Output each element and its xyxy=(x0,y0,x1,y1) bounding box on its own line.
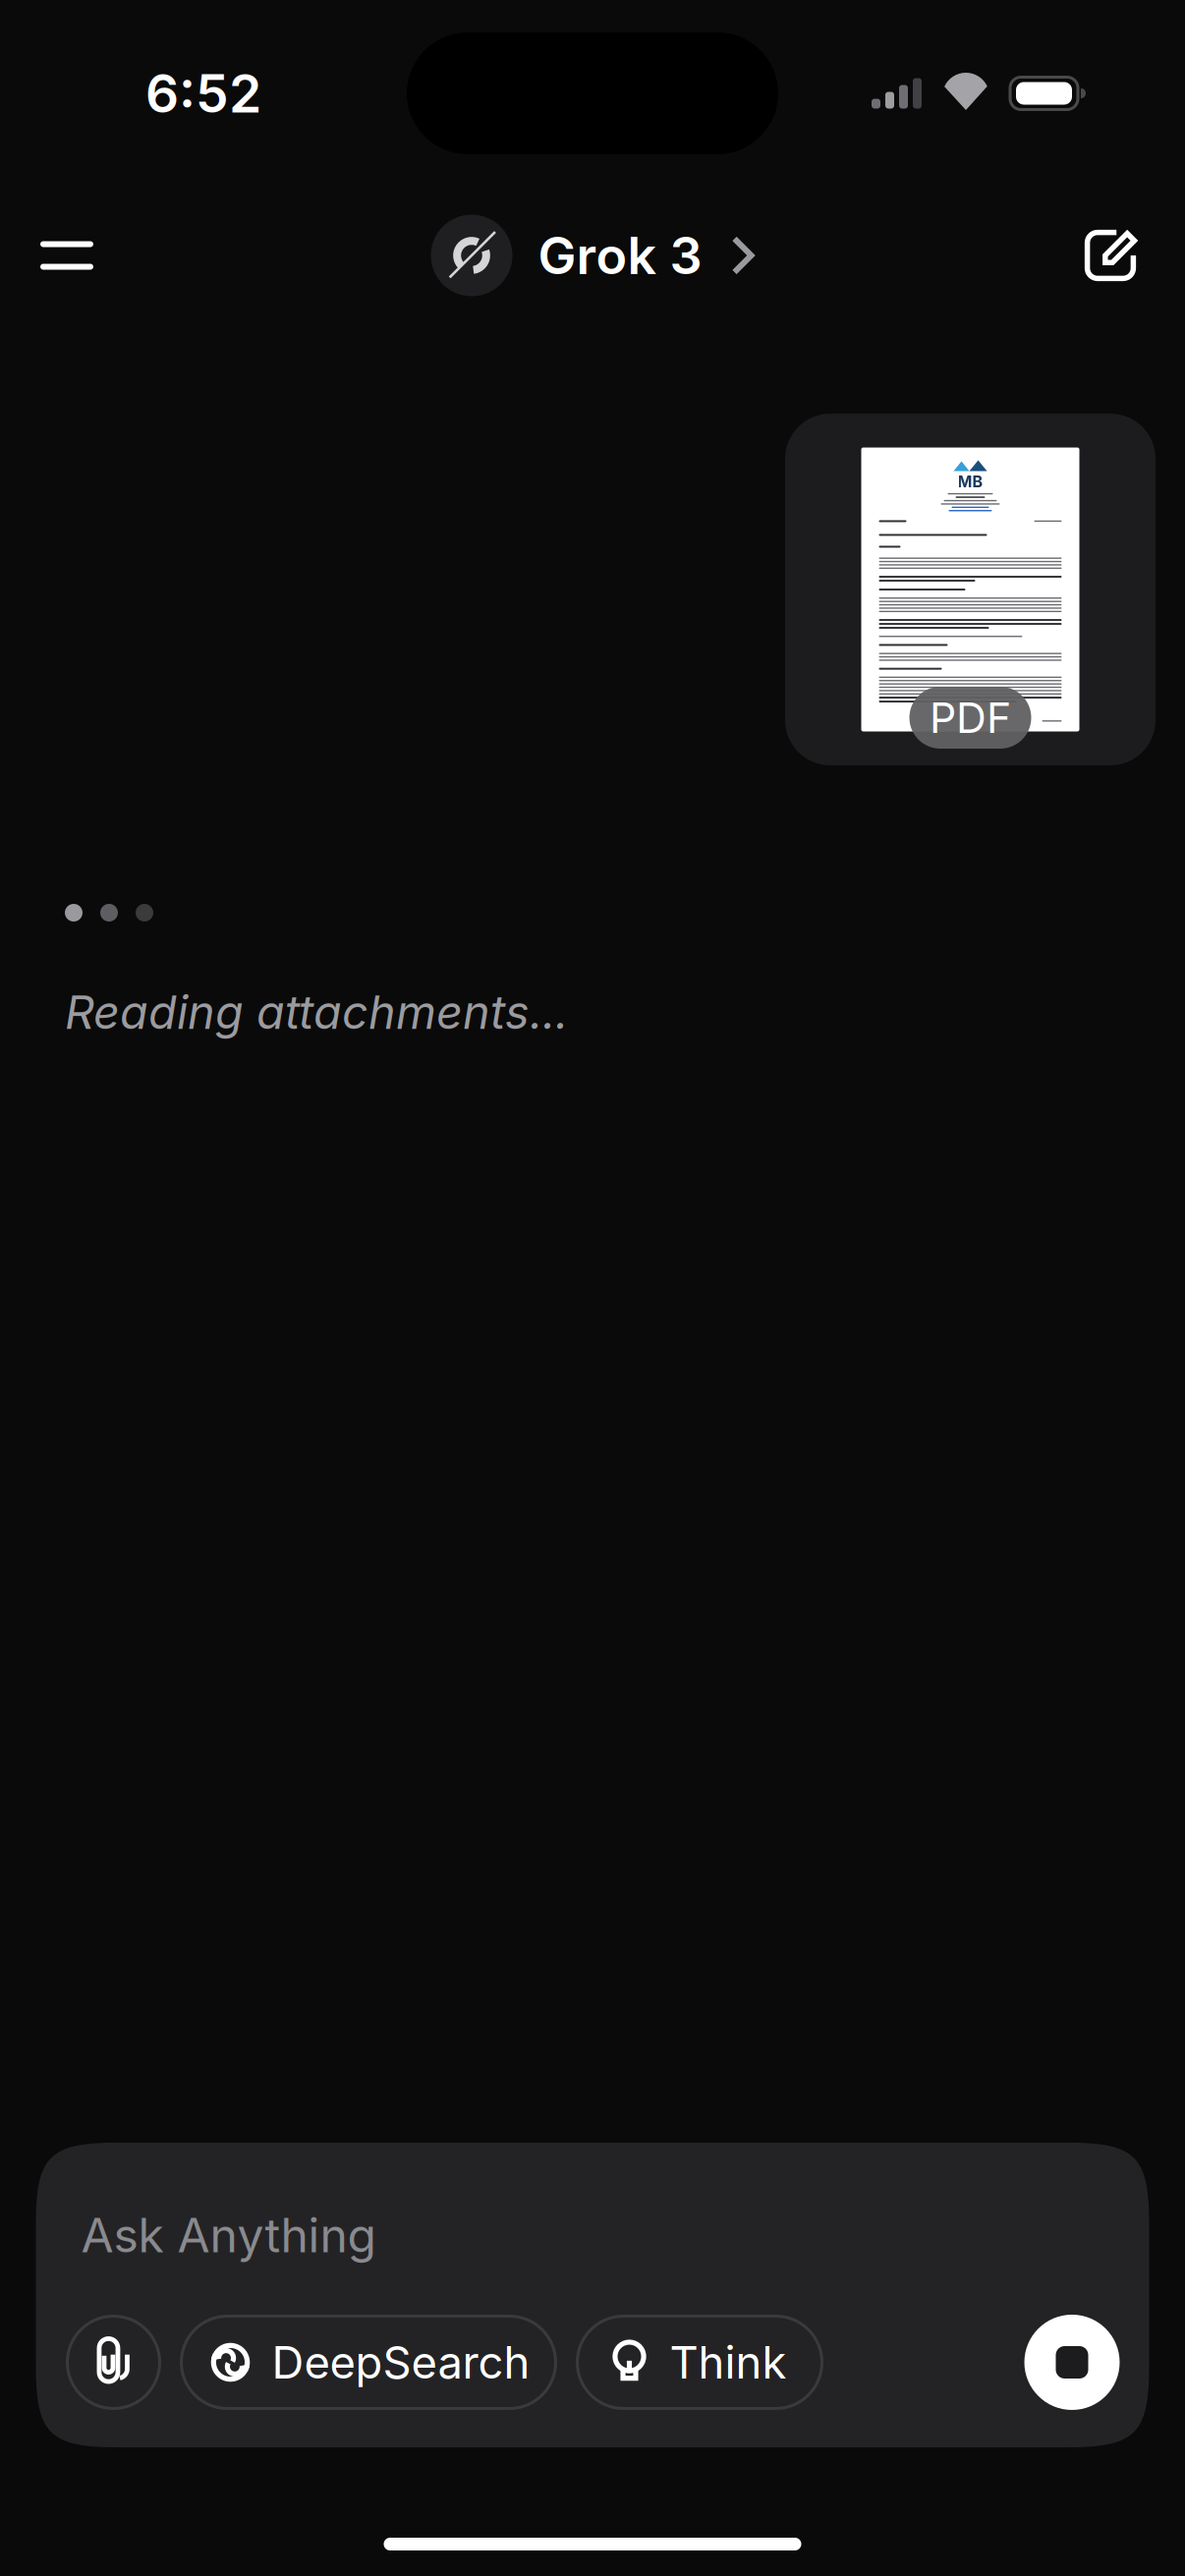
button[interactable]: PDF attachment xyxy=(785,414,1156,765)
button[interactable]: New chat xyxy=(1065,210,1156,301)
staticText: PDF xyxy=(930,692,1011,743)
staticText: MB xyxy=(958,472,983,491)
staticText: DeepSearch xyxy=(272,2335,530,2389)
button[interactable]: Menu xyxy=(22,210,112,301)
staticText: Ask Anything xyxy=(81,2206,376,2264)
staticText: 6:52 xyxy=(145,62,261,125)
button[interactable]: Attach file xyxy=(67,2316,160,2408)
staticText: Think xyxy=(670,2335,787,2389)
button[interactable]: DeepSearch xyxy=(181,2316,556,2408)
staticText: Reading attachments... xyxy=(65,984,568,1040)
button[interactable]: Stop xyxy=(1024,2315,1120,2410)
staticText: Grok 3 xyxy=(538,224,702,286)
button[interactable]: Grok 3 xyxy=(417,199,768,312)
button[interactable]: Think xyxy=(577,2316,822,2408)
